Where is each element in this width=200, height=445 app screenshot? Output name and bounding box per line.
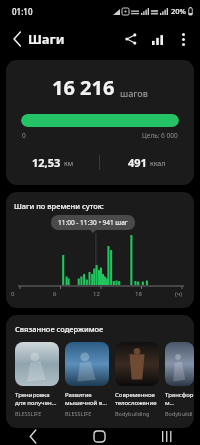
staticText: Bodybuilding: [115, 410, 150, 417]
button[interactable]: 16 216: [6, 60, 194, 185]
button[interactable]: Back: [6, 28, 28, 50]
staticText: 491: [128, 155, 147, 170]
staticText: Развитие мышечной вынос…: [65, 391, 109, 407]
button[interactable]: Шаги по времени суток:: [6, 192, 194, 308]
staticText: 16 216: [52, 74, 115, 101]
staticText: 0: [11, 290, 15, 298]
staticText: 12,53: [32, 155, 61, 170]
button[interactable]: Современное телосложение: [115, 342, 159, 417]
staticText: (ч): [175, 290, 183, 298]
staticText: Тренировка для получения бр…: [15, 391, 59, 407]
staticText: 11:00 - 11:30 • 941 шаг: [58, 218, 128, 227]
staticText: Трансформ…: [165, 391, 194, 407]
button[interactable]: Back: [0, 428, 66, 445]
staticText: 12: [93, 290, 100, 298]
staticText: BLESSLIFE: [65, 410, 92, 417]
button[interactable]: More options: [171, 27, 195, 51]
staticText: BLESSLIFE: [15, 410, 42, 417]
staticText: Шаги: [28, 30, 65, 48]
staticText: 20%: [171, 6, 186, 16]
staticText: Современное телосложение: [115, 391, 157, 407]
button[interactable]: Тренировка для получения бр…: [15, 342, 59, 417]
staticText: 18: [135, 290, 142, 298]
button[interactable]: Home: [66, 428, 133, 445]
staticText: шагов: [120, 87, 148, 99]
button[interactable]: Share: [119, 27, 143, 51]
staticText: Цель: 6 000: [142, 131, 178, 140]
staticText: Связанное содержимое: [15, 324, 104, 334]
staticText: Bodybuildin…: [165, 410, 194, 417]
staticText: 01:10: [12, 6, 33, 17]
button[interactable]: Развитие мышечной вынос…: [65, 342, 109, 417]
button[interactable]: Statistics: [145, 27, 169, 51]
button[interactable]: Трансформ…: [165, 342, 194, 417]
staticText: Шаги по времени суток:: [14, 201, 104, 211]
staticText: ккал: [150, 159, 166, 169]
staticText: 6: [53, 290, 57, 298]
staticText: 0: [22, 131, 26, 140]
staticText: км: [64, 159, 74, 169]
button[interactable]: Recent apps: [133, 428, 200, 445]
